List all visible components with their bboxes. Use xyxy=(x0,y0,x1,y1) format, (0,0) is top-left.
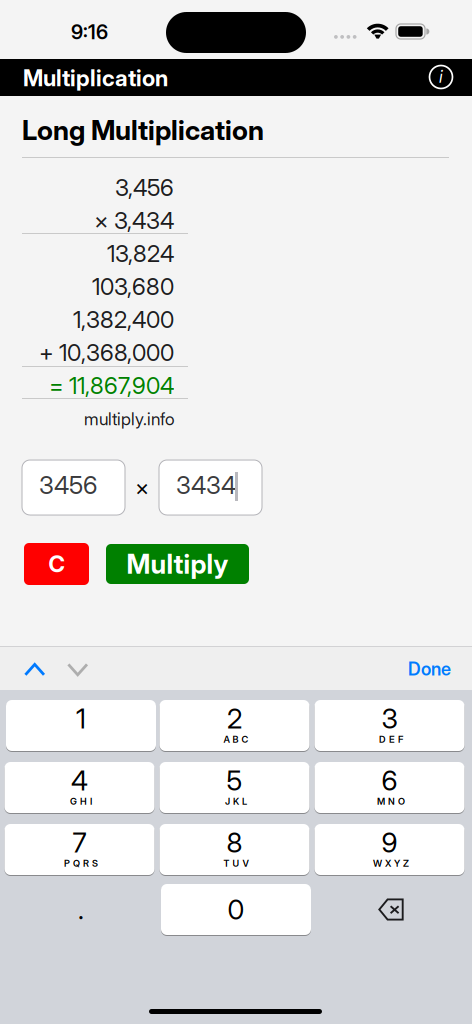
staticText: 11,867,904 xyxy=(69,371,174,400)
staticText: 13,824 xyxy=(107,239,174,268)
staticText: C xyxy=(48,550,64,578)
button[interactable]: Multiply xyxy=(106,544,249,584)
staticText: 1,382,400 xyxy=(73,305,174,334)
staticText: × xyxy=(135,473,149,501)
staticText: Long Multiplication xyxy=(22,113,264,147)
button[interactable]: 1 xyxy=(6,700,156,751)
button[interactable]: 7 xyxy=(6,824,156,875)
button[interactable]: Info xyxy=(424,60,458,94)
staticText: 1 xyxy=(76,702,86,735)
staticText: 0 xyxy=(227,893,244,926)
staticText: 9 xyxy=(381,826,397,859)
staticText: JKL xyxy=(225,796,247,807)
staticText: = xyxy=(49,371,64,400)
button[interactable]: Done xyxy=(408,659,454,679)
staticText: × xyxy=(94,206,109,234)
staticText: 5 xyxy=(226,764,242,797)
button[interactable]: 0 xyxy=(161,884,311,935)
staticText: PQRS xyxy=(64,858,98,869)
button[interactable]: . xyxy=(6,884,156,935)
button[interactable]: 6 xyxy=(316,762,466,813)
staticText: 8 xyxy=(226,826,242,859)
staticText: Multiply xyxy=(126,548,228,580)
staticText: DEF xyxy=(379,734,403,745)
staticText: Multiplication xyxy=(23,64,168,92)
button[interactable]: 9 xyxy=(316,824,466,875)
staticText: 2 xyxy=(227,702,242,735)
staticText: TUV xyxy=(223,858,248,869)
staticText: multiply.info xyxy=(84,408,175,429)
staticText: . xyxy=(78,893,84,926)
staticText: 7 xyxy=(72,826,86,859)
button[interactable]: 5 xyxy=(161,762,311,813)
staticText: 103,680 xyxy=(92,272,174,301)
staticText: GHI xyxy=(70,796,92,807)
staticText: 6 xyxy=(381,764,397,797)
button[interactable]: Delete xyxy=(316,884,466,935)
button[interactable]: 8 xyxy=(161,824,311,875)
staticText: ABC xyxy=(223,734,248,745)
button[interactable]: 4 xyxy=(6,762,156,813)
staticText: 3434 xyxy=(176,470,236,500)
staticText: MNO xyxy=(377,796,405,807)
staticText: 3 xyxy=(381,702,397,735)
staticText: i xyxy=(439,66,443,87)
button[interactable]: C xyxy=(24,543,89,585)
staticText: 3,456 xyxy=(115,173,174,201)
staticText: 9:16 xyxy=(71,20,108,44)
staticText: 4 xyxy=(71,764,88,797)
staticText: 10,368,000 xyxy=(59,338,174,367)
button[interactable]: 3 xyxy=(316,700,466,751)
staticText: Done xyxy=(408,658,451,680)
staticText: 3456 xyxy=(39,470,97,500)
button[interactable]: Next field xyxy=(67,663,88,676)
staticText: + xyxy=(39,338,54,367)
staticText: 3,434 xyxy=(114,206,174,234)
button[interactable]: 2 xyxy=(161,700,311,751)
staticText: WXYZ xyxy=(373,858,409,869)
button[interactable]: Previous field xyxy=(24,663,45,676)
